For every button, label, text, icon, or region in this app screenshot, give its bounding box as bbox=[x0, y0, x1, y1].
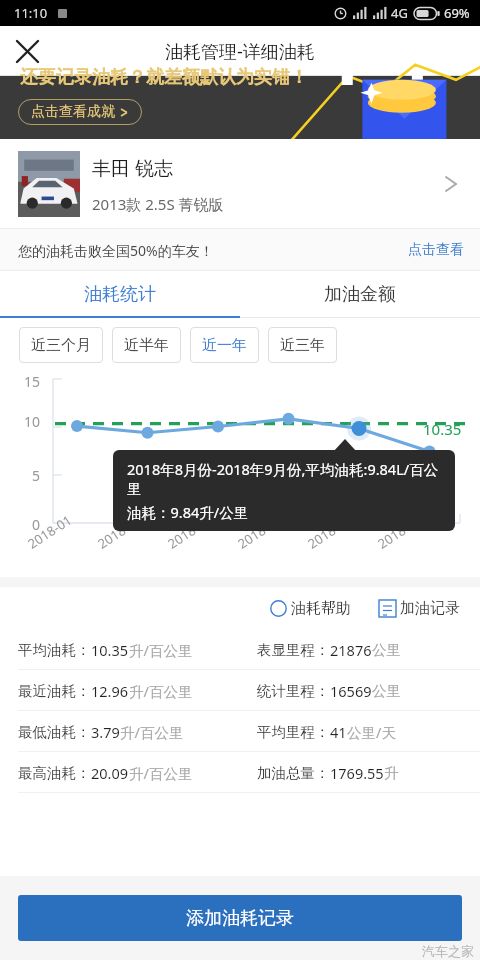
staticText: 近三个月 bbox=[31, 336, 91, 355]
staticText: 点击查看 bbox=[408, 241, 464, 259]
staticText: 2013款 2.5S 菁锐版 bbox=[92, 194, 224, 214]
staticText: 10.35 bbox=[423, 419, 462, 439]
staticText: 公里 bbox=[372, 641, 401, 659]
button[interactable]: 加油金额 bbox=[240, 271, 480, 318]
staticText: 3.79 bbox=[91, 722, 120, 742]
staticText: 油耗统计 bbox=[84, 283, 156, 306]
staticText: 丰田 锐志 bbox=[92, 155, 173, 181]
staticText: 2018-01 bbox=[24, 511, 75, 553]
staticText: 16569 bbox=[330, 681, 372, 701]
button[interactable]: 近一年 bbox=[190, 327, 259, 363]
button[interactable]: 还要记录油耗？就差额默认为实锚！ bbox=[0, 76, 480, 139]
staticText: 油耗帮助 bbox=[291, 599, 351, 618]
staticText: 平均里程： bbox=[257, 723, 330, 741]
staticText: 4G bbox=[391, 4, 408, 22]
staticText: 2018-11 bbox=[374, 511, 425, 553]
staticText: 2018-07 bbox=[234, 511, 285, 553]
staticText: 加油金额 bbox=[324, 283, 396, 306]
staticText: 油耗管理-详细油耗 bbox=[165, 39, 315, 64]
staticText: 5 bbox=[32, 466, 41, 485]
staticText: 近一年 bbox=[202, 336, 247, 355]
staticText: 21876 bbox=[330, 640, 372, 660]
staticText: 添加油耗记录 bbox=[186, 907, 294, 930]
button[interactable]: Close bbox=[6, 30, 48, 72]
staticText: 10 bbox=[24, 412, 41, 431]
button[interactable]: 近三个月 bbox=[19, 327, 103, 363]
staticText: 20.09 bbox=[91, 763, 129, 783]
button[interactable]: 丰田 锐志 bbox=[0, 139, 480, 229]
staticText: 最低油耗： bbox=[18, 723, 91, 741]
staticText: 公里/天 bbox=[347, 722, 396, 742]
staticText: 近三年 bbox=[280, 336, 325, 355]
staticText: 最近油耗： bbox=[18, 682, 91, 700]
staticText: 油耗：9.84升/公里 bbox=[127, 502, 249, 522]
staticText: 41 bbox=[330, 722, 347, 742]
staticText: 10.35 bbox=[91, 640, 129, 660]
staticText: 汽车之家 bbox=[422, 943, 474, 959]
staticText: 69% bbox=[444, 4, 470, 22]
staticText: 升/百公里 bbox=[129, 640, 193, 660]
staticText: 1769.55 bbox=[330, 763, 384, 783]
staticText: 12.96 bbox=[91, 681, 129, 701]
staticText: 最高油耗： bbox=[18, 764, 91, 782]
staticText: 还要记录油耗？就差额默认为实锚！ bbox=[20, 66, 308, 89]
staticText: 升/百公里 bbox=[120, 722, 184, 742]
button[interactable]: 加油记录 bbox=[375, 593, 464, 624]
staticText: 公里 bbox=[372, 682, 401, 700]
staticText: 表显里程： bbox=[257, 641, 330, 659]
button[interactable]: 点击查看 bbox=[392, 233, 480, 267]
staticText: 近半年 bbox=[124, 336, 169, 355]
staticText: 点击查看成就 bbox=[31, 103, 115, 121]
staticText: 2018-03 bbox=[94, 511, 145, 553]
staticText: 统计里程： bbox=[257, 682, 330, 700]
staticText: 您的油耗击败全国50%的车友！ bbox=[18, 241, 214, 260]
button[interactable]: 油耗统计 bbox=[0, 271, 240, 318]
staticText: 平均油耗： bbox=[18, 641, 91, 659]
button[interactable]: 近三年 bbox=[268, 327, 337, 363]
button[interactable]: 点击查看成就 bbox=[18, 99, 142, 125]
staticText: 2018年8月份-2018年9月份,平均油耗:9.84L/百公里 bbox=[127, 459, 441, 498]
staticText: 0 bbox=[32, 515, 41, 534]
staticText: 加油记录 bbox=[400, 599, 460, 618]
staticText: 加油总量： bbox=[257, 764, 330, 782]
staticText: 2018-05 bbox=[164, 511, 215, 553]
staticText: 2018-09 bbox=[304, 511, 355, 553]
button[interactable]: 油耗帮助 bbox=[266, 593, 355, 624]
staticText: 升/百公里 bbox=[129, 763, 193, 783]
button[interactable]: 近半年 bbox=[112, 327, 181, 363]
staticText: 升 bbox=[384, 764, 399, 782]
staticText: 11:10 bbox=[14, 4, 48, 22]
staticText: 升/百公里 bbox=[129, 681, 193, 701]
button[interactable]: 添加油耗记录 bbox=[18, 895, 462, 941]
staticText: 15 bbox=[24, 372, 41, 391]
